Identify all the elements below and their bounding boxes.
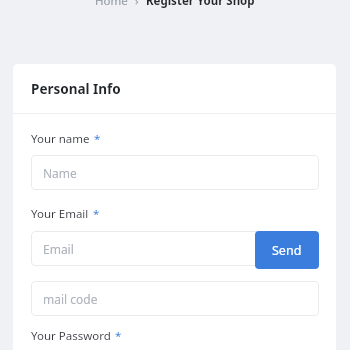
button[interactable]: Home	[95, 0, 128, 9]
staticText: ›	[135, 0, 139, 9]
staticText: Email	[43, 241, 74, 257]
staticText: Register Your Shop	[146, 0, 255, 9]
button[interactable]: Name	[31, 155, 319, 190]
staticText: Your Password	[31, 328, 111, 344]
button[interactable]: Email	[31, 231, 319, 266]
staticText: Personal Info	[31, 80, 121, 98]
staticText: Send	[272, 242, 302, 259]
staticText: Name	[43, 165, 77, 181]
staticText: *	[94, 131, 101, 147]
staticText: mail code	[43, 291, 98, 307]
staticText: Your name	[31, 131, 90, 147]
staticText: *	[115, 328, 122, 344]
staticText: Your Email	[31, 206, 89, 222]
staticText: *	[93, 206, 100, 222]
button[interactable]: mail code	[31, 281, 319, 316]
button[interactable]: Send	[255, 231, 319, 269]
